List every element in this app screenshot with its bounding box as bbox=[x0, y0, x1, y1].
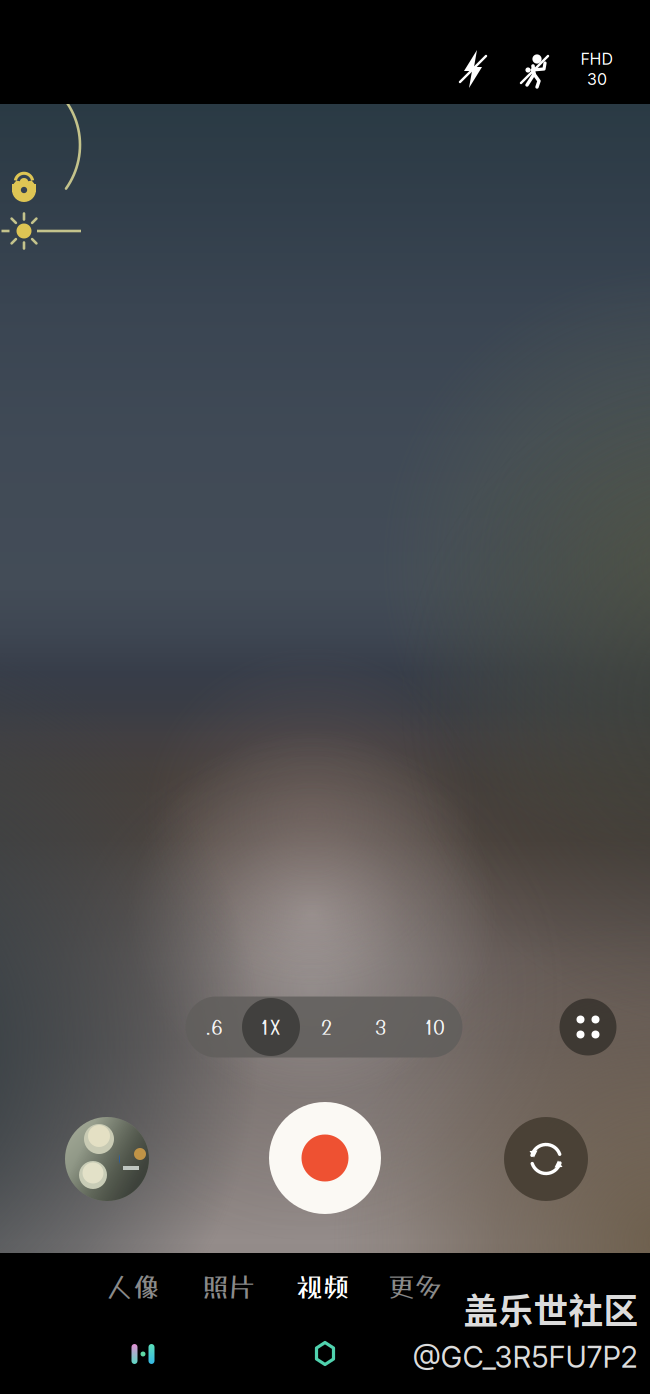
button[interactable]: 更多 bbox=[388, 1271, 442, 1303]
button[interactable]: Record video bbox=[265, 1098, 385, 1218]
button[interactable]: Motion photo off bbox=[507, 41, 561, 97]
staticText: 30 bbox=[587, 69, 607, 89]
staticText: 照片 bbox=[202, 1271, 256, 1303]
staticText: 盖乐世社区 bbox=[463, 1284, 638, 1334]
button[interactable]: Last captured photo bbox=[61, 1113, 153, 1205]
staticText: 更多 bbox=[388, 1271, 442, 1303]
button[interactable]: 照片 bbox=[202, 1271, 256, 1303]
button[interactable]: 2 bbox=[299, 996, 353, 1057]
button[interactable]: More camera options bbox=[556, 995, 620, 1059]
staticText: FHD bbox=[580, 49, 613, 68]
staticText: 1X bbox=[261, 1015, 281, 1039]
button[interactable]: 人像 bbox=[106, 1271, 160, 1303]
button[interactable]: 3 bbox=[353, 996, 407, 1057]
button[interactable]: Navigation handle bbox=[123, 1339, 163, 1369]
staticText: 2 bbox=[321, 1015, 332, 1039]
button[interactable]: Flash off bbox=[446, 41, 500, 97]
staticText: 3 bbox=[375, 1015, 386, 1039]
button[interactable]: 1X bbox=[242, 996, 299, 1057]
staticText: @GC_3R5FU7P2 bbox=[412, 1339, 637, 1375]
button[interactable]: FHD bbox=[570, 42, 624, 96]
button[interactable]: Assistant bbox=[309, 1339, 341, 1369]
staticText: 10 bbox=[425, 1015, 445, 1039]
button[interactable]: Switch camera bbox=[500, 1113, 592, 1205]
staticText: .6 bbox=[205, 1015, 223, 1039]
button[interactable]: .6 bbox=[185, 996, 242, 1057]
button[interactable]: 视频 bbox=[296, 1271, 350, 1303]
staticText: 视频 bbox=[296, 1271, 350, 1303]
staticText: 人像 bbox=[106, 1271, 160, 1303]
button[interactable]: 10 bbox=[407, 996, 462, 1057]
